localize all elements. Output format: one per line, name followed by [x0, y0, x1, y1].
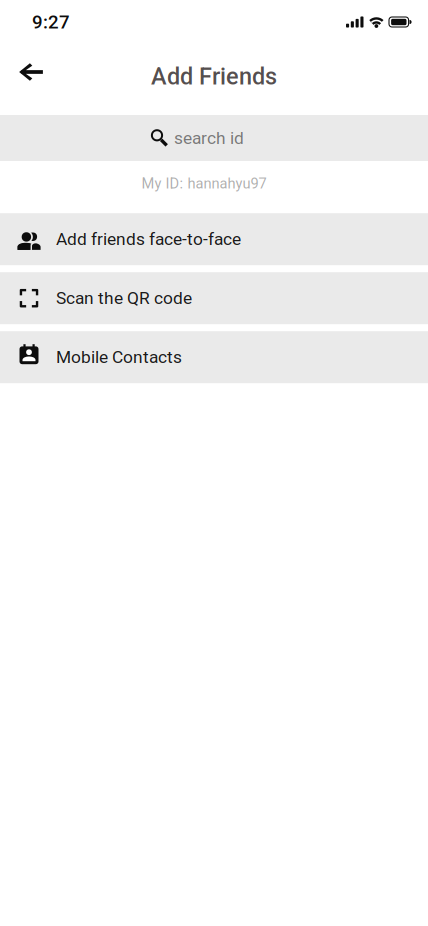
button[interactable]: Back	[0, 52, 62, 92]
staticText: Scan the QR code	[56, 288, 192, 308]
button[interactable]: search id	[0, 115, 428, 161]
staticText: Mobile Contacts	[56, 347, 182, 367]
button[interactable]: Add friends face-to-face	[0, 213, 428, 265]
staticText: 9:27	[32, 11, 70, 33]
button[interactable]: Scan the QR code	[0, 272, 428, 324]
staticText: search id	[174, 128, 244, 148]
staticText: My ID: hannahyu97	[141, 175, 266, 192]
staticText: Add Friends	[151, 63, 277, 90]
staticText: Add friends face-to-face	[56, 229, 241, 249]
button[interactable]: Mobile Contacts	[0, 331, 428, 383]
